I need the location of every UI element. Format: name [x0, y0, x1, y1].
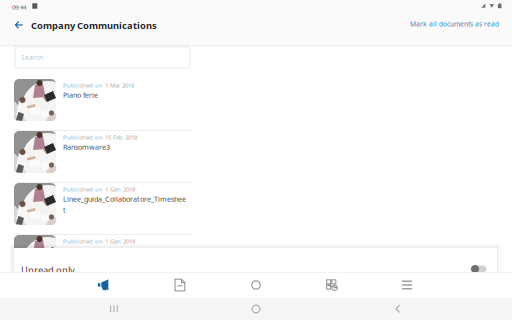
button[interactable]: Recent apps [86, 298, 142, 320]
staticText: Cosa rappresenta l'innovazione [63, 246, 166, 256]
staticText: Mark all documents as read [410, 19, 499, 29]
staticText: Published on 1 Gen 2018 [63, 237, 135, 245]
button[interactable]: Back [5, 11, 33, 39]
staticText: Published on 15 Feb 2018 [63, 133, 137, 141]
button[interactable]: Published on 1 Gen 2018 [0, 183, 512, 234]
button[interactable]: Published on 1 Mar 2018 [0, 79, 512, 130]
button[interactable]: Home [228, 298, 284, 320]
staticText: t [63, 205, 66, 215]
button[interactable]: Published on 15 Feb 2018 [0, 131, 512, 182]
button[interactable]: Unread only [471, 261, 487, 277]
staticText: Published on 1 Mar 2018 [63, 81, 134, 89]
staticText: Search [21, 53, 43, 62]
button[interactable]: Published on 1 Gen 2018 [0, 235, 512, 286]
staticText: Linee_guida_Collaboratore_Timeshee [63, 194, 186, 204]
staticText: Ransomware3 [63, 142, 110, 152]
staticText: 09:44 [12, 3, 26, 11]
button[interactable]: Back [370, 298, 426, 320]
button[interactable]: Applications [294, 272, 370, 298]
button[interactable]: Mark all documents as read [403, 13, 499, 35]
staticText: Piano ferie [63, 90, 98, 100]
staticText: Company Communications [31, 19, 157, 32]
staticText: Unread only [21, 264, 75, 276]
staticText: Published on 1 Gen 2018 [63, 185, 135, 193]
button[interactable]: Menu [369, 272, 445, 298]
button[interactable]: Status [218, 272, 294, 298]
button[interactable]: Communications [65, 272, 141, 298]
button[interactable]: Documents [142, 272, 218, 298]
